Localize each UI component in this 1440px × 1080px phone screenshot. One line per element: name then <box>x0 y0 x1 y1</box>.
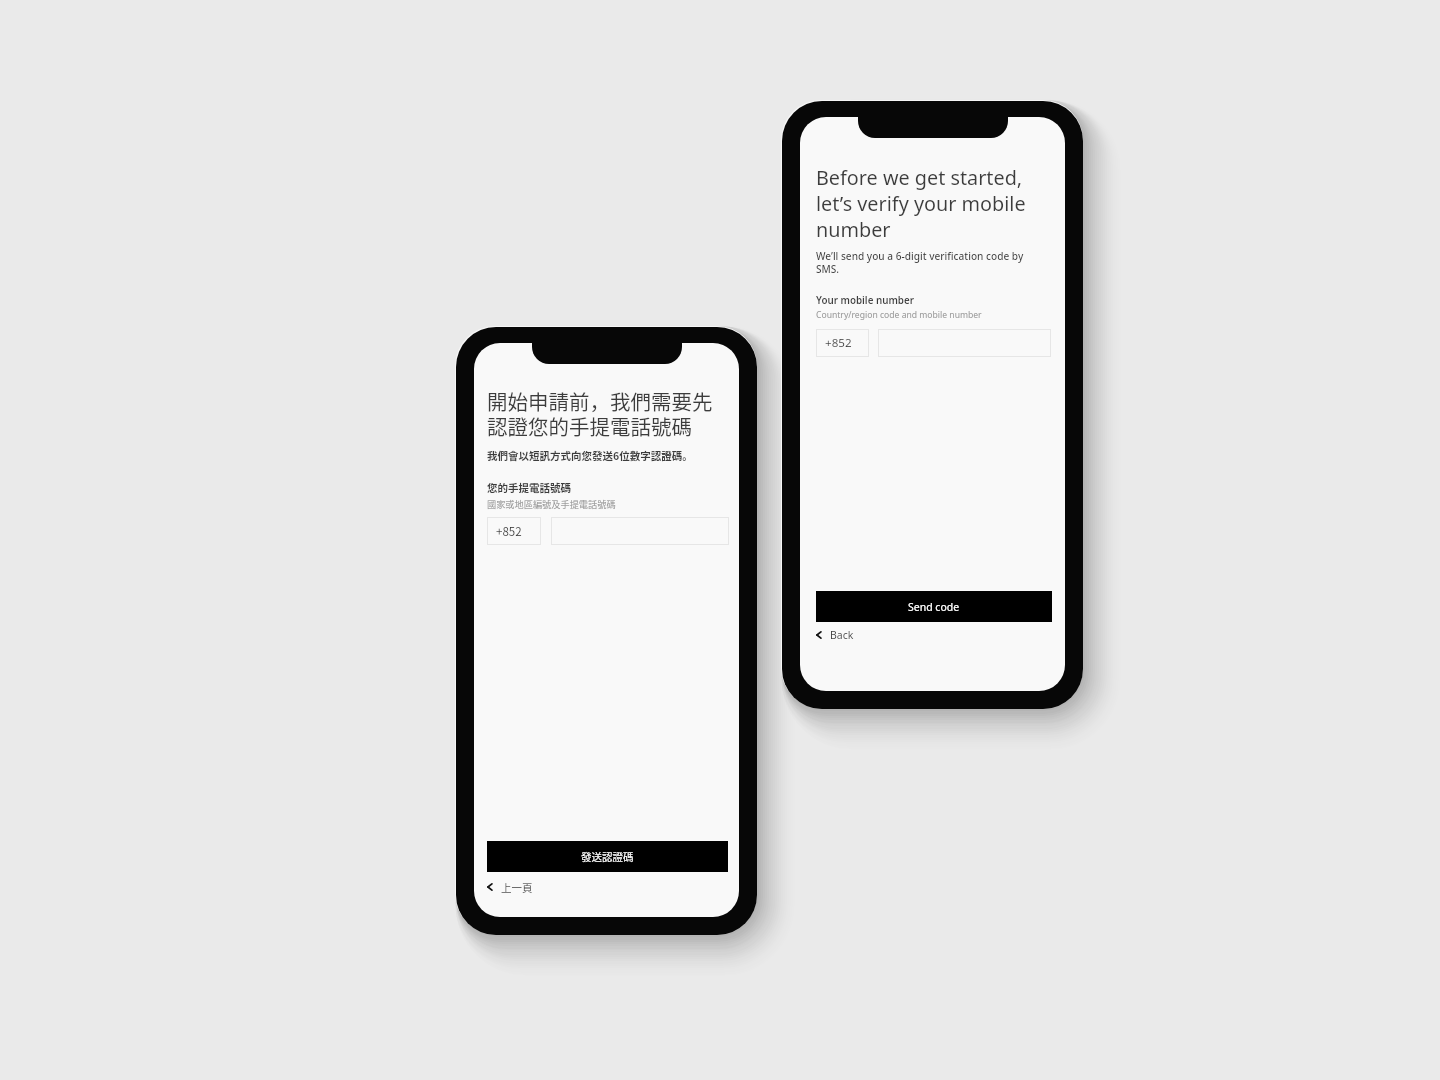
button[interactable]: 上一頁 <box>484 878 533 896</box>
staticText: 發送認證碼 <box>581 849 634 864</box>
staticText: 您的手提電話號碼 <box>487 480 571 495</box>
staticText: We’ll send you a 6-digit verification co… <box>816 249 1031 276</box>
button[interactable]: 發送認證碼 <box>487 841 728 872</box>
staticText: 我們會以短訊方式向您發送6位數字認證碼。 <box>487 448 702 463</box>
staticText: +852 <box>825 335 852 351</box>
button[interactable]: Send code <box>816 591 1052 622</box>
button[interactable]: Back <box>813 626 854 644</box>
staticText: 國家或地區編號及手提電話號碼 <box>487 497 616 510</box>
button[interactable]: Country or region code <box>816 329 869 357</box>
staticText: 上一頁 <box>501 880 533 895</box>
button[interactable]: 手提電話號碼 <box>551 517 729 545</box>
button[interactable]: Mobile number <box>878 329 1051 357</box>
staticText: Send code <box>908 600 960 614</box>
staticText: Country/region code and mobile number <box>816 309 982 321</box>
staticText: 開始申請前，我們需要先 認證您的手提電話號碼 <box>487 386 729 441</box>
other: 上一頁 <box>484 881 496 893</box>
staticText: +852 <box>496 523 522 540</box>
staticText: Back <box>830 628 854 642</box>
button[interactable]: 國家或地區編號 <box>487 517 541 545</box>
other: Back <box>813 629 825 641</box>
staticText: Your mobile number <box>816 294 914 307</box>
staticText: Before we get started, let’s verify your… <box>816 164 1031 243</box>
